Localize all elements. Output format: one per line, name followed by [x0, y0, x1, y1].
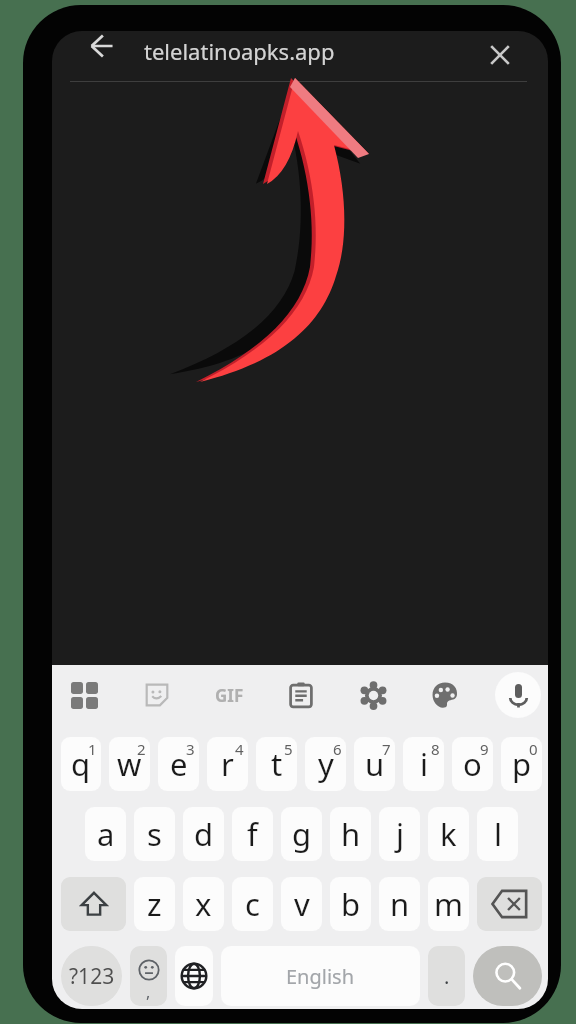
staticText: 6: [333, 739, 342, 759]
button[interactable]: x: [183, 877, 224, 931]
button[interactable]: Back: [80, 31, 122, 67]
staticText: 0: [529, 739, 538, 759]
button[interactable]: Apps: [62, 673, 106, 717]
staticText: j: [396, 813, 404, 855]
staticText: 1: [88, 739, 97, 759]
staticText: n: [390, 883, 410, 925]
button[interactable]: v: [281, 877, 322, 931]
button[interactable]: q: [61, 737, 101, 791]
button[interactable]: o: [452, 737, 493, 791]
staticText: f: [247, 813, 258, 855]
button[interactable]: Search: [473, 946, 542, 1006]
staticText: 8: [431, 739, 440, 759]
staticText: c: [245, 883, 260, 925]
button[interactable]: English: [221, 946, 420, 1006]
button[interactable]: i: [403, 737, 444, 791]
staticText: y: [318, 743, 334, 785]
staticText: v: [294, 883, 310, 925]
staticText: 2: [137, 739, 146, 759]
staticText: b: [341, 883, 361, 925]
button[interactable]: GIF: [207, 673, 251, 717]
staticText: d: [194, 813, 214, 855]
button[interactable]: ?123: [61, 946, 122, 1006]
button[interactable]: c: [232, 877, 273, 931]
button[interactable]: l: [477, 807, 518, 861]
button[interactable]: n: [379, 877, 420, 931]
button[interactable]: Change language: [175, 946, 213, 1006]
staticText: e: [170, 743, 188, 785]
button[interactable]: b: [330, 877, 371, 931]
staticText: k: [440, 813, 457, 855]
staticText: o: [463, 743, 482, 785]
staticText: 3: [186, 739, 195, 759]
button[interactable]: .: [428, 946, 465, 1006]
button[interactable]: Close: [479, 34, 521, 76]
staticText: s: [147, 813, 162, 855]
staticText: z: [147, 883, 162, 925]
staticText: .: [444, 963, 450, 990]
button[interactable]: y: [305, 737, 346, 791]
staticText: h: [341, 813, 361, 855]
staticText: 4: [235, 739, 244, 759]
staticText: English: [286, 963, 355, 990]
staticText: p: [512, 743, 532, 785]
staticText: l: [494, 813, 502, 855]
button[interactable]: Shift: [61, 877, 126, 931]
button[interactable]: Themes: [423, 673, 467, 717]
staticText: w: [117, 743, 142, 785]
button[interactable]: a: [85, 807, 126, 861]
button[interactable]: f: [232, 807, 273, 861]
button[interactable]: m: [428, 877, 469, 931]
button[interactable]: r: [207, 737, 248, 791]
button[interactable]: s: [134, 807, 175, 861]
button[interactable]: e: [158, 737, 199, 791]
button[interactable]: g: [281, 807, 322, 861]
button[interactable]: Settings: [351, 673, 395, 717]
button[interactable]: Stickers: [135, 673, 179, 717]
button[interactable]: t: [256, 737, 297, 791]
button[interactable]: z: [134, 877, 175, 931]
staticText: 9: [480, 739, 489, 759]
button[interactable]: w: [109, 737, 150, 791]
staticText: ,: [146, 981, 151, 1003]
staticText: telelatinoapks.app: [144, 36, 335, 66]
staticText: u: [365, 743, 385, 785]
button[interactable]: k: [428, 807, 469, 861]
button[interactable]: Backspace: [477, 877, 542, 931]
button[interactable]: p: [501, 737, 542, 791]
staticText: GIF: [215, 684, 244, 707]
button[interactable]: h: [330, 807, 371, 861]
button[interactable]: j: [379, 807, 420, 861]
staticText: x: [195, 883, 212, 925]
staticText: 5: [284, 739, 293, 759]
button[interactable]: u: [354, 737, 395, 791]
staticText: g: [292, 813, 312, 855]
staticText: r: [221, 743, 234, 785]
button[interactable]: d: [183, 807, 224, 861]
button[interactable]: Voice input: [495, 672, 541, 718]
staticText: m: [434, 883, 463, 925]
staticText: i: [420, 743, 428, 785]
staticText: q: [71, 743, 91, 785]
staticText: a: [97, 813, 115, 855]
staticText: 7: [382, 739, 391, 759]
button[interactable]: Clipboard: [279, 673, 323, 717]
staticText: ?123: [69, 962, 115, 991]
staticText: t: [271, 743, 283, 785]
button[interactable]: Emoji: [130, 946, 167, 1006]
